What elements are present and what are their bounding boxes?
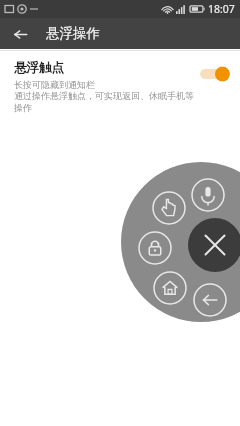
staticText: 悬浮操作 [46,25,100,42]
button[interactable]: Close [188,218,240,272]
button[interactable]: Back [5,19,35,49]
button[interactable]: Lock screen [139,232,171,264]
button[interactable]: Toggle floating touch [200,66,230,82]
button[interactable]: 悬浮触点 [0,51,240,124]
staticText: 通过操作悬浮触点，可实现返回、休眠手机等操作 [14,90,194,114]
button[interactable]: Voice assistant [192,179,224,211]
button[interactable]: Back [194,284,226,316]
staticText: 长按可隐藏到通知栏 [14,79,95,90]
button[interactable]: Home [154,272,186,304]
staticText: 18:07 [208,2,235,16]
staticText: 悬浮触点 [14,60,64,76]
button[interactable]: Touch gesture [153,192,185,224]
